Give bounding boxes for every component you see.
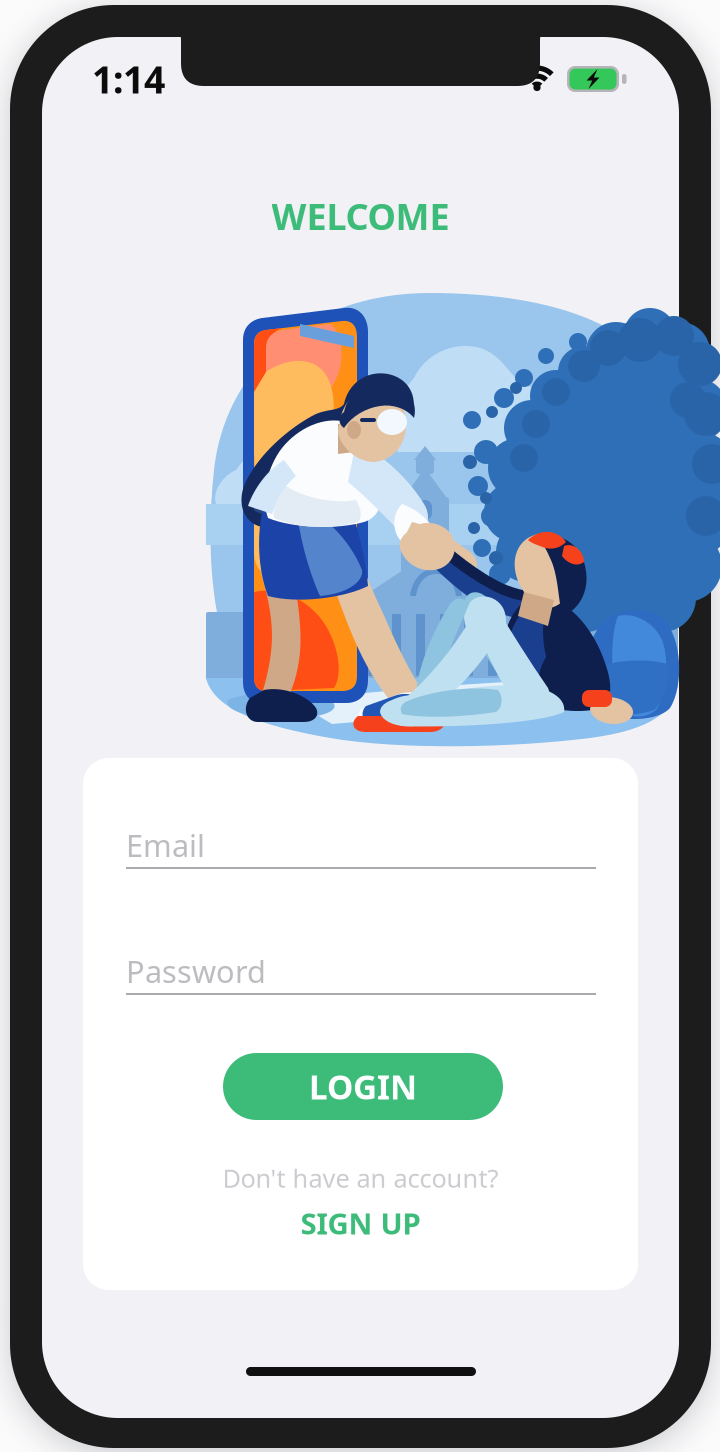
- staticText: Password: [126, 951, 266, 991]
- button[interactable]: SIGN UP: [83, 1204, 638, 1242]
- staticText: Don't have an account?: [222, 1161, 498, 1195]
- staticText: Email: [126, 825, 205, 865]
- button[interactable]: LOGIN: [223, 1053, 503, 1120]
- staticText: SIGN UP: [300, 1203, 420, 1242]
- staticText: WELCOME: [271, 192, 449, 240]
- staticText: LOGIN: [309, 1064, 417, 1109]
- staticText: 1:14: [92, 54, 165, 104]
